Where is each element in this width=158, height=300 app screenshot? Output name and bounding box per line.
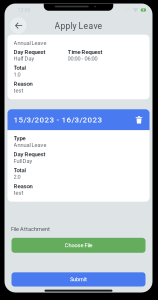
staticText: Annual Leave [13, 142, 46, 148]
staticText: Type [13, 135, 25, 142]
button[interactable]: Submit [11, 272, 145, 286]
staticText: 15/3/2023 - 16/3/2023 [13, 115, 102, 124]
staticText: Submit [70, 276, 87, 283]
button[interactable]: Delete [133, 113, 144, 127]
button[interactable]: Back [9, 17, 27, 35]
staticText: Total [13, 64, 25, 71]
staticText: Day Request [13, 48, 45, 55]
staticText: Reason [13, 80, 32, 87]
staticText: test [13, 190, 23, 196]
staticText: Apply Leave [54, 21, 102, 31]
staticText: Reason [13, 183, 32, 190]
staticText: Choose File [64, 242, 92, 249]
staticText: 00:00 - 06:00 [67, 55, 97, 62]
staticText: 2.0 [13, 174, 20, 180]
staticText: Half Day [13, 55, 34, 62]
staticText: Full Day [13, 158, 32, 164]
staticText: test [13, 87, 23, 94]
button[interactable]: Choose File [11, 238, 145, 253]
staticText: 12:36 [17, 7, 30, 13]
staticText: Total [13, 167, 25, 174]
staticText: 1.0 [13, 71, 20, 78]
staticText: Day Request [13, 151, 45, 158]
staticText: Annual Leave [13, 40, 46, 46]
staticText: File Attachment [11, 226, 50, 232]
staticText: Time Request [67, 48, 102, 55]
